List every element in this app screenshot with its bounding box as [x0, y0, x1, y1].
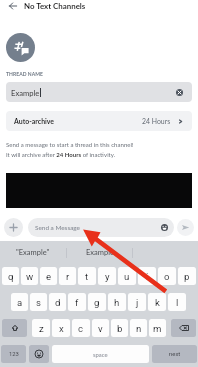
staticText: Example [86, 248, 114, 257]
button[interactable]: v [92, 319, 109, 337]
staticText: u [124, 271, 130, 282]
button[interactable]: f [68, 293, 86, 311]
staticText: No Text Channels [24, 1, 86, 10]
staticText: Auto-archive [14, 117, 55, 125]
staticText: j [136, 297, 139, 308]
button[interactable]: Emoji keyboard [29, 345, 49, 363]
button[interactable]: Clear [173, 86, 186, 99]
button[interactable]: t [78, 267, 96, 285]
staticText: "Example" [16, 248, 50, 257]
button[interactable]: "Example" [0, 241, 66, 264]
button[interactable]: n [130, 319, 147, 337]
button[interactable]: Example [67, 241, 132, 264]
button[interactable]: h [108, 293, 126, 311]
staticText: h [114, 297, 120, 308]
button[interactable]: k [148, 293, 166, 311]
button[interactable]: u [118, 267, 136, 285]
staticText: c [78, 323, 84, 334]
staticText: m [153, 323, 162, 334]
button[interactable]: Back [7, 0, 19, 12]
staticText: d [55, 297, 61, 308]
button[interactable]: Auto-archive [6, 111, 192, 131]
staticText: y [105, 271, 110, 282]
button[interactable]: i [138, 267, 156, 285]
staticText: next [169, 351, 181, 358]
button[interactable]: Send a Message [28, 218, 174, 237]
button[interactable]: s [30, 293, 47, 311]
staticText: Send a Message [35, 224, 80, 232]
button[interactable]: o [158, 267, 176, 285]
staticText: r [66, 271, 70, 282]
staticText: space [93, 351, 108, 358]
staticText: p [184, 271, 190, 282]
staticText: v [98, 323, 103, 334]
button[interactable]: e [40, 267, 57, 285]
button[interactable]: a [11, 293, 28, 311]
button[interactable]: g [88, 293, 106, 311]
button[interactable]: space [52, 345, 149, 363]
button[interactable]: Shift [2, 319, 27, 337]
staticText: n [136, 323, 142, 334]
button[interactable]: q [2, 267, 19, 285]
staticText: g [94, 297, 100, 308]
staticText: l [176, 297, 179, 308]
staticText: 24 Hours [142, 117, 171, 125]
staticText: f [75, 297, 79, 308]
staticText: i [146, 271, 149, 282]
button[interactable]: p [178, 267, 196, 285]
button[interactable]: Backspace [171, 319, 196, 337]
button[interactable]: Emoji [160, 223, 169, 232]
button[interactable]: y [98, 267, 116, 285]
staticText: q [8, 271, 14, 282]
staticText: x [59, 323, 64, 334]
staticText: 123 [9, 351, 19, 358]
button[interactable]: Example [6, 82, 192, 102]
staticText: w [26, 271, 34, 282]
button[interactable]: 123 [1, 345, 26, 363]
button[interactable]: c [72, 319, 90, 337]
button[interactable]: m [149, 319, 166, 337]
staticText: a [17, 297, 23, 308]
button[interactable]: l [168, 293, 186, 311]
staticText: THREAD NAME [6, 71, 43, 77]
button[interactable]: w [21, 267, 38, 285]
button[interactable]: b [111, 319, 128, 337]
button[interactable]: next [152, 345, 197, 363]
button[interactable]: r [59, 267, 76, 285]
button[interactable]: z [32, 319, 50, 337]
staticText: o [164, 271, 170, 282]
button[interactable]: d [49, 293, 66, 311]
staticText: b [117, 323, 123, 334]
staticText: Send a message to start a thread in this… [6, 141, 134, 158]
staticText: t [85, 271, 89, 282]
staticText: s [36, 297, 41, 308]
button[interactable]: j [128, 293, 146, 311]
button[interactable]: Send [177, 219, 194, 236]
staticText: z [39, 323, 44, 334]
staticText: e [46, 271, 52, 282]
staticText: Example [11, 88, 40, 97]
button[interactable]: x [52, 319, 70, 337]
staticText: k [155, 297, 160, 308]
button[interactable]: Add attachment [4, 218, 23, 237]
